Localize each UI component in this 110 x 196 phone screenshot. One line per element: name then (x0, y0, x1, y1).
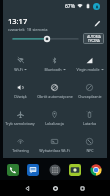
staticText: Wyświetlacz Wi-Fi (39, 148, 70, 153)
staticText: czwartek, 18 sierpnia (8, 27, 48, 31)
button[interactable]: Oszczędzanie (72, 73, 107, 100)
staticText: Virgin mobile (76, 67, 100, 72)
button[interactable]: All apps (49, 164, 61, 176)
staticText: AUTOMA (87, 35, 101, 39)
staticText: Dźwięk (14, 94, 27, 99)
staticText: TYCZNA (88, 39, 100, 43)
staticText: Oszczędzanie (78, 94, 102, 99)
button[interactable]: Wyświetlacz Wi-Fi (37, 127, 72, 154)
button[interactable]: Lokalizacja (37, 100, 72, 127)
staticText: Latarka (83, 121, 96, 126)
button[interactable]: Virgin mobile (72, 46, 107, 73)
button[interactable]: Obrót automatyczne (37, 73, 72, 100)
staticText: Lokalizacja (45, 121, 64, 126)
staticText: 13:17 (8, 16, 28, 26)
button[interactable]: Bluetooth (37, 46, 72, 73)
button[interactable]: Back (23, 180, 32, 196)
staticText: 67% (65, 3, 75, 10)
button[interactable]: Messages (27, 164, 39, 176)
button[interactable]: Edit (90, 16, 104, 30)
staticText: Wi-Fi (14, 67, 23, 72)
button[interactable]: Phone (7, 164, 19, 176)
staticText: Bluetooth (44, 67, 62, 72)
button[interactable]: Wi-Fi (3, 46, 37, 73)
button[interactable]: NFC (72, 127, 107, 154)
staticText: Obrót automatyczne (37, 94, 73, 99)
button[interactable]: Latarka (72, 100, 107, 127)
staticText: NFC (86, 148, 94, 153)
button[interactable]: Recents (78, 180, 87, 196)
button[interactable]: Tryb samolotowy (3, 100, 37, 127)
staticText: Tethering (12, 148, 29, 153)
button[interactable]: User account (93, 3, 100, 10)
button[interactable]: Chrome (90, 164, 102, 176)
button[interactable]: Tethering (3, 127, 37, 154)
button[interactable]: Dźwięk (3, 73, 37, 100)
button[interactable]: Home (51, 180, 60, 196)
staticText: Tryb samolotowy (5, 121, 35, 126)
button[interactable]: Camera (69, 164, 81, 176)
button[interactable]: AUTOMA (83, 33, 104, 44)
